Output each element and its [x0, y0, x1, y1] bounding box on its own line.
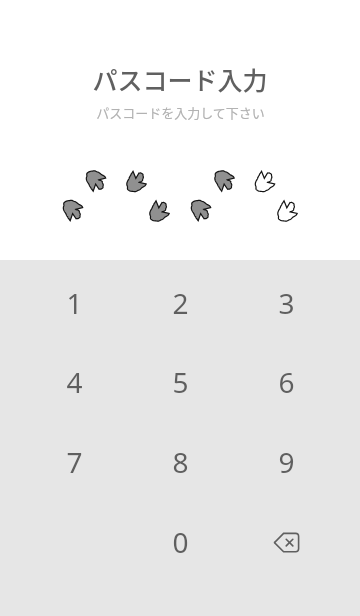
staticText: パスコード入力 — [92, 61, 268, 97]
staticText: 2 — [172, 284, 189, 322]
staticText: 8 — [172, 443, 189, 481]
staticText: 0 — [172, 523, 189, 561]
staticText: 3 — [278, 284, 295, 322]
staticText: パスコードを入力して下さい — [96, 103, 265, 122]
staticText: 5 — [172, 363, 189, 401]
button[interactable]: 7 — [21, 422, 127, 502]
button[interactable]: 4 — [21, 342, 127, 422]
button[interactable]: Delete — [233, 502, 339, 582]
button[interactable]: 1 — [21, 263, 127, 343]
button[interactable]: 0 — [127, 502, 233, 582]
button[interactable]: 2 — [127, 263, 233, 343]
button[interactable]: 3 — [233, 263, 339, 343]
staticText: 1 — [66, 284, 83, 322]
button[interactable]: 6 — [233, 342, 339, 422]
button[interactable]: 5 — [127, 342, 233, 422]
staticText: 7 — [66, 443, 83, 481]
staticText: 9 — [278, 443, 295, 481]
staticText: 6 — [278, 363, 295, 401]
button[interactable]: 9 — [233, 422, 339, 502]
staticText: 4 — [66, 363, 83, 401]
button[interactable]: 8 — [127, 422, 233, 502]
